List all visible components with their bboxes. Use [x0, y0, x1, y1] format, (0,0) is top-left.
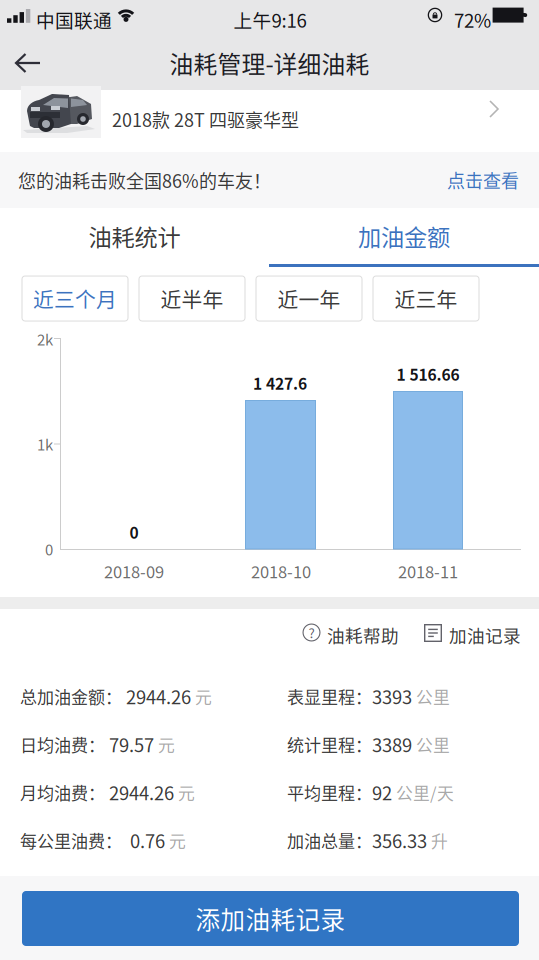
staticText: 平均里程： [287, 780, 372, 805]
staticText: 近三个月 [33, 283, 117, 313]
staticText: 2018-11 [398, 559, 458, 583]
staticText: 2944.26 [109, 779, 178, 806]
staticText: 总加油金额： [20, 684, 126, 709]
staticText: 元 [158, 732, 175, 756]
staticText: 元 [178, 780, 195, 804]
staticText: 您的油耗击败全国86%的车友！ [18, 167, 271, 193]
staticText: 油耗帮助 [327, 622, 399, 647]
staticText: 加油记录 [449, 622, 521, 647]
staticText: 0.76 [126, 827, 169, 854]
button[interactable]: 近三年 [373, 276, 479, 321]
staticText: 上午9:16 [233, 6, 306, 33]
button[interactable]: 近一年 [256, 276, 362, 321]
staticText: ? [308, 623, 314, 642]
button[interactable]: 近半年 [139, 276, 245, 321]
button[interactable]: 油耗统计 [0, 208, 269, 264]
staticText: 0 [45, 538, 53, 560]
staticText: 元 [195, 684, 212, 708]
staticText: 升 [431, 828, 448, 852]
staticText: 日均油费： [20, 732, 109, 757]
staticText: 公里 [416, 684, 450, 708]
staticText: 2018-09 [104, 559, 164, 583]
staticText: 加油金额 [358, 219, 450, 253]
staticText: 油耗管理-详细油耗 [169, 46, 369, 80]
staticText: 月均油费： [20, 780, 109, 805]
staticText: 元 [169, 828, 186, 852]
staticText: 1 427.6 [253, 372, 307, 394]
staticText: 2944.26 [126, 683, 195, 710]
staticText: 3389 [372, 731, 416, 758]
button[interactable]: 加油记录 [424, 609, 518, 665]
button[interactable]: 近三个月 [22, 276, 128, 321]
staticText: 添加油耗记录 [195, 901, 345, 936]
staticText: 公里 [416, 732, 450, 756]
staticText: 中国联通 [36, 6, 112, 33]
staticText: 1k [37, 433, 53, 455]
staticText: 点击查看 [447, 167, 519, 193]
staticText: 公里/天 [396, 780, 454, 804]
staticText: 356.33 [372, 827, 431, 854]
staticText: 2k [37, 328, 53, 350]
staticText: 统计里程： [287, 732, 372, 757]
staticText: 79.57 [109, 731, 158, 758]
staticText: 3393 [372, 683, 416, 710]
button[interactable]: 点击查看 [409, 152, 519, 208]
button[interactable]: 添加油耗记录 [22, 891, 519, 946]
staticText: 72% [454, 6, 491, 33]
button[interactable]: 返回 [0, 36, 56, 90]
staticText: 油耗统计 [88, 219, 180, 253]
staticText: 92 [372, 779, 396, 806]
button[interactable]: 2018款 28T 四驱豪华型 [0, 90, 539, 152]
staticText: 2018-10 [251, 559, 311, 583]
button[interactable]: ? [302, 609, 396, 665]
staticText: 加油总量： [287, 828, 372, 853]
staticText: 近半年 [160, 283, 223, 313]
staticText: 表显里程： [287, 684, 372, 709]
staticText: 0 [129, 521, 138, 543]
staticText: 1 516.66 [396, 363, 459, 385]
staticText: 2018款 28T 四驱豪华型 [112, 106, 299, 132]
staticText: 近三年 [394, 283, 457, 313]
button[interactable]: 加油金额 [269, 208, 539, 264]
staticText: 近一年 [277, 283, 340, 313]
staticText: 每公里油费： [20, 828, 126, 853]
